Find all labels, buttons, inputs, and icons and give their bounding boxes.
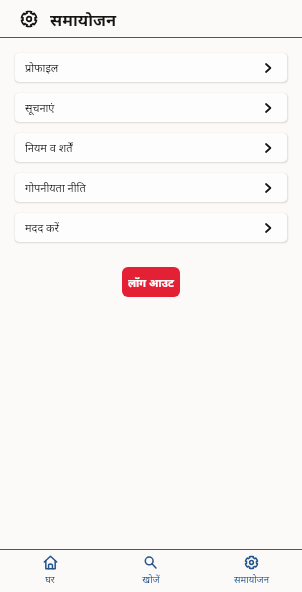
staticText: नियम व शर्तें <box>25 140 73 155</box>
button[interactable]: Search <box>100 550 201 591</box>
button[interactable]: प्रोफाइल <box>15 53 287 82</box>
button[interactable]: गोपनीयता नीति <box>15 173 287 202</box>
staticText: मदद करें <box>25 220 60 235</box>
staticText: समायोजन <box>50 8 117 30</box>
staticText: खोजें <box>142 573 160 586</box>
button[interactable]: सूचनाएं <box>15 93 287 122</box>
button[interactable]: नियम व शर्तें <box>15 133 287 162</box>
staticText: प्रोफाइल <box>25 60 59 75</box>
button[interactable]: मदद करें <box>15 213 287 242</box>
staticText: समायोजन <box>234 573 269 586</box>
staticText: घर <box>45 573 55 586</box>
button[interactable]: Home <box>0 550 100 591</box>
staticText: सूचनाएं <box>25 100 55 115</box>
staticText: लॉग आउट <box>128 275 174 290</box>
button[interactable]: लॉग आउट <box>122 267 180 297</box>
button[interactable]: Settings <box>201 550 302 591</box>
staticText: गोपनीयता नीति <box>25 180 86 195</box>
